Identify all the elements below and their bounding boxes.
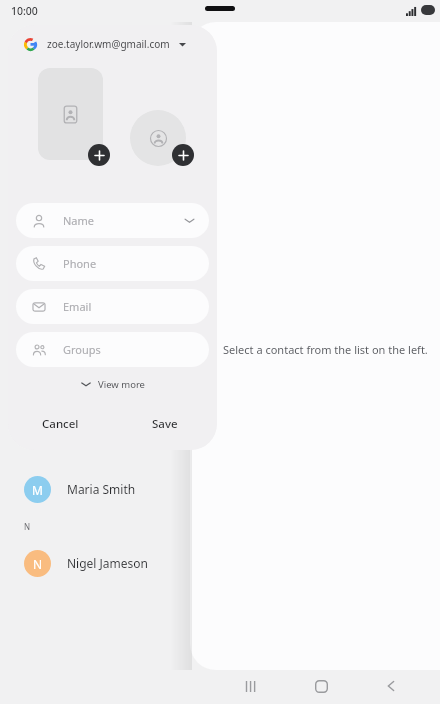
button[interactable]: Cancel xyxy=(8,398,112,450)
staticText: M xyxy=(32,482,43,498)
button[interactable]: Add picture xyxy=(172,144,194,166)
staticText: N xyxy=(24,521,31,532)
staticText: Phone xyxy=(63,256,97,271)
staticText: Groups xyxy=(63,342,101,357)
button[interactable]: Name xyxy=(16,203,209,238)
staticText: View more xyxy=(98,378,145,391)
staticText: zoe.taylor.wm@gmail.com xyxy=(47,37,170,51)
button[interactable]: Add contact photo xyxy=(38,68,103,160)
button[interactable]: Add profile picture xyxy=(130,110,186,166)
button[interactable]: Groups xyxy=(16,332,209,367)
button[interactable]: Email xyxy=(16,289,209,324)
staticText: Select a contact from the list on the le… xyxy=(223,342,428,357)
button[interactable]: Home xyxy=(286,668,356,704)
button[interactable]: Recent apps xyxy=(216,668,286,704)
staticText: Save xyxy=(152,416,178,432)
button[interactable]: Back xyxy=(356,668,426,704)
staticText: Email xyxy=(63,299,92,314)
button[interactable]: View more xyxy=(8,367,217,401)
staticText: Nigel Jameson xyxy=(67,555,149,571)
button[interactable]: Save xyxy=(112,398,217,450)
staticText: Name xyxy=(63,213,95,228)
staticText: Cancel xyxy=(42,416,79,432)
button[interactable]: M xyxy=(0,466,190,512)
button[interactable]: N xyxy=(0,540,190,586)
button[interactable]: zoe.taylor.wm@gmail.com xyxy=(8,25,217,63)
staticText: 10:00 xyxy=(11,4,38,18)
staticText: N xyxy=(33,556,43,572)
button[interactable]: Phone xyxy=(16,246,209,281)
staticText: Maria Smith xyxy=(67,481,136,497)
button[interactable]: Add photo xyxy=(88,144,110,166)
